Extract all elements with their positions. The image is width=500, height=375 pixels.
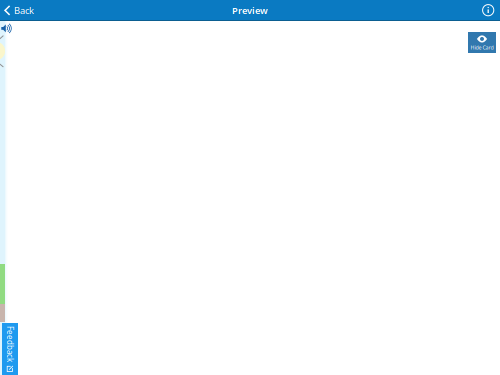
staticText: Hide Card	[470, 44, 493, 51]
button[interactable]: Info	[436, 0, 500, 21]
staticText: Preview	[232, 4, 268, 17]
button[interactable]: Hide Card	[468, 32, 496, 53]
button[interactable]: Back	[0, 0, 64, 21]
button[interactable]: Feedback	[2, 323, 18, 375]
staticText: Back	[14, 4, 34, 17]
staticText: Feedback	[0, 339, 28, 349]
